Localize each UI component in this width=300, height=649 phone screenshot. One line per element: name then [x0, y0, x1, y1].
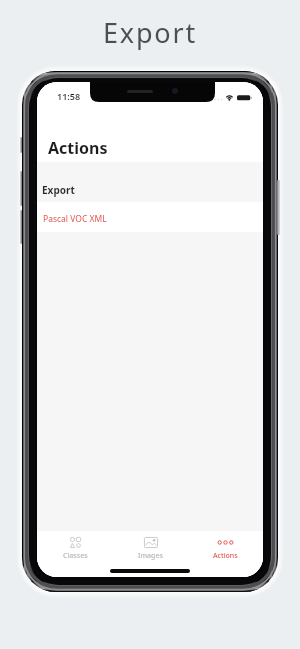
staticText: Pascal VOC XML	[43, 213, 107, 225]
staticText: Classes	[63, 551, 88, 561]
other: Actions	[217, 537, 234, 548]
staticText: Actions	[48, 137, 108, 159]
other: Images	[144, 537, 158, 548]
button[interactable]: Classes	[37, 536, 113, 566]
staticText: Actions	[213, 551, 238, 561]
other: Classes	[70, 537, 81, 548]
staticText: Export	[42, 183, 75, 197]
button[interactable]: Actions	[188, 536, 263, 566]
staticText: Images	[138, 551, 163, 561]
staticText: Export	[0, 14, 300, 51]
staticText: 11:58	[57, 90, 81, 102]
button[interactable]: Images	[113, 536, 188, 566]
button[interactable]: Pascal VOC XML	[37, 202, 263, 232]
